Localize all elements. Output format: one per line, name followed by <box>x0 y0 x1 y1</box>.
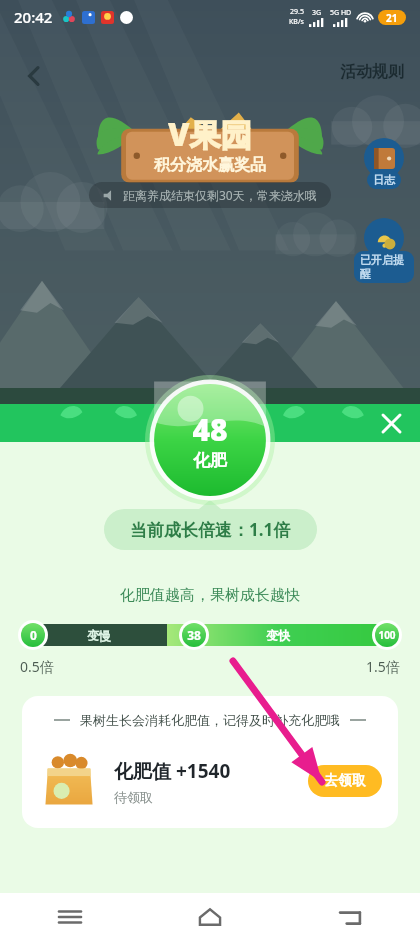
staticText: 48 <box>192 409 228 450</box>
staticText: 化肥 <box>193 450 227 471</box>
staticText: V果园 <box>168 113 252 155</box>
staticText: 距离养成结束仅剩30天，常来浇水哦 <box>123 187 317 203</box>
staticText: 化肥值 +1540 <box>114 758 231 784</box>
button[interactable]: 当前成长倍速：1.1倍 <box>104 509 317 550</box>
staticText: 已开启提醒 <box>360 253 408 281</box>
button[interactable]: Back <box>14 56 54 96</box>
button[interactable]: Recent apps <box>0 893 140 940</box>
staticText: 5G HD <box>330 8 352 18</box>
staticText: KB/s <box>289 17 304 27</box>
button[interactable]: 日志 <box>354 138 414 196</box>
staticText: 3G <box>312 8 322 18</box>
staticText: 变快 <box>266 628 290 643</box>
button[interactable]: 活动规则 <box>324 58 420 86</box>
staticText: 待领取 <box>114 789 153 805</box>
button[interactable]: 化肥值 +1540 <box>38 750 382 812</box>
staticText: 29.5 <box>290 7 304 17</box>
staticText: 0.5倍 <box>20 657 54 676</box>
staticText: 20:42 <box>14 7 53 27</box>
button[interactable]: 已开启提醒 <box>354 218 414 290</box>
staticText: 21 <box>386 11 398 25</box>
button[interactable]: 48 <box>145 375 275 505</box>
staticText: 日志 <box>373 173 395 187</box>
staticText: 去领取 <box>324 772 366 790</box>
staticText: 活动规则 <box>340 62 404 82</box>
button[interactable]: 距离养成结束仅剩30天，常来浇水哦 <box>89 182 331 208</box>
button[interactable]: 去领取 <box>308 765 382 797</box>
staticText: 100 <box>378 628 396 642</box>
staticText: 果树生长会消耗化肥值，记得及时补充化肥哦 <box>80 712 340 728</box>
staticText: 1.5倍 <box>366 657 400 676</box>
staticText: 变慢 <box>87 628 111 643</box>
staticText: 化肥值越高，果树成长越快 <box>120 586 300 605</box>
staticText: 38 <box>187 627 201 643</box>
button[interactable]: Close <box>374 406 408 440</box>
staticText: 当前成长倍速：1.1倍 <box>130 518 291 541</box>
button[interactable]: Home <box>140 893 280 940</box>
staticText: 积分浇水赢奖品 <box>154 155 266 175</box>
button[interactable]: Back <box>280 893 420 940</box>
staticText: 0 <box>30 627 37 643</box>
